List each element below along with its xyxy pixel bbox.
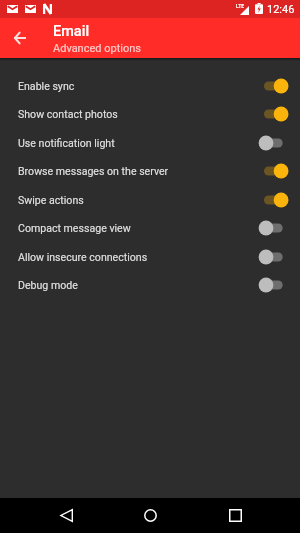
staticText: Debug mode — [18, 279, 78, 291]
button[interactable]: Show contact photos — [0, 99, 300, 128]
staticText: Swipe actions — [18, 194, 84, 206]
button[interactable]: Browse messages on the server — [0, 156, 300, 185]
staticText: Enable sync — [18, 80, 75, 92]
button[interactable]: Swipe actions — [0, 185, 300, 214]
other: On — [259, 106, 289, 122]
other: Off — [259, 249, 289, 265]
button[interactable]: Back — [48, 498, 84, 533]
staticText: Use notification light — [18, 137, 115, 149]
other: Off — [259, 277, 289, 293]
other: On — [259, 163, 289, 179]
staticText: Email — [53, 23, 90, 40]
other: Off — [259, 220, 289, 236]
staticText: LTE — [236, 3, 245, 9]
button[interactable]: Recent apps — [217, 498, 253, 533]
staticText: Allow insecure connections — [18, 251, 148, 263]
other: On — [259, 78, 289, 94]
button[interactable]: Navigate up — [0, 18, 40, 58]
button[interactable]: Home — [132, 498, 168, 533]
other: Off — [259, 135, 289, 151]
other: On — [259, 192, 289, 208]
button[interactable]: Use notification light — [0, 128, 300, 157]
button[interactable]: Allow insecure connections — [0, 242, 300, 271]
staticText: Show contact photos — [18, 108, 118, 120]
staticText: 12:46 — [267, 3, 295, 16]
staticText: Advanced options — [53, 42, 141, 55]
staticText: Browse messages on the server — [18, 165, 169, 177]
button[interactable]: Debug mode — [0, 270, 300, 299]
button[interactable]: Enable sync — [0, 71, 300, 100]
staticText: Compact message view — [18, 222, 131, 234]
button[interactable]: Compact message view — [0, 213, 300, 242]
